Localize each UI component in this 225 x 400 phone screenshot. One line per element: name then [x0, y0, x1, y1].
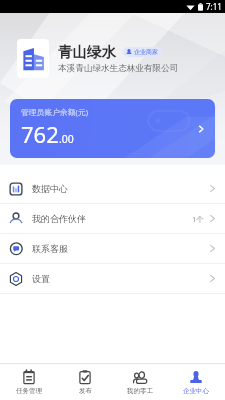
staticText: 联系客服 [32, 243, 68, 254]
staticText: 我的合作伙伴 [32, 213, 86, 224]
button[interactable]: 联系客服 [0, 234, 225, 264]
staticText: 企业中心 [183, 387, 209, 395]
button[interactable]: 数据中心 [0, 174, 225, 204]
staticText: 数据中心 [32, 183, 68, 194]
staticText: 发布 [79, 387, 92, 395]
staticText: 设置 [32, 273, 50, 284]
staticText: 企业商家 [134, 48, 158, 56]
button[interactable]: 任务管理 [3, 367, 55, 397]
button[interactable]: 设置 [0, 264, 225, 294]
button[interactable]: 我的合作伙伴 [0, 204, 225, 234]
button[interactable]: 企业中心 [170, 367, 222, 397]
staticText: 任务管理 [16, 387, 42, 395]
button[interactable]: 管理员账户余额(元) [10, 99, 215, 158]
staticText: 1个 [192, 214, 204, 224]
other: 查看余额详情 [195, 123, 207, 135]
button[interactable]: 发布 [59, 367, 111, 397]
staticText: 青山绿水 [58, 43, 116, 61]
button[interactable]: 我的零工 [114, 367, 166, 397]
staticText: 管理员账户余额(元) [21, 107, 89, 118]
staticText: 762 [21, 119, 59, 149]
staticText: .00 [59, 132, 74, 146]
staticText: 我的零工 [127, 387, 153, 395]
staticText: 本溪青山绿水生态林业有限公司 [58, 63, 179, 74]
staticText: 7:11 [206, 1, 222, 12]
